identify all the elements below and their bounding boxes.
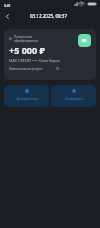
- button[interactable]: Пополнение: [4, 29, 96, 80]
- staticText: +5 000 ₽: [9, 44, 45, 56]
- button[interactable]: Оспорить: [51, 85, 96, 107]
- button[interactable]: Chat with support: [78, 34, 91, 47]
- button[interactable]: Документы: [4, 85, 49, 107]
- staticText: Финансовые услуги: [9, 66, 43, 71]
- staticText: Пополнение: [14, 35, 33, 39]
- staticText: 03.12.2025, 09:37: [30, 13, 67, 19]
- staticText: Документы: [16, 96, 38, 101]
- staticText: Оспорить: [65, 96, 83, 101]
- button[interactable]: Back: [1, 11, 13, 22]
- staticText: обрабатывается: [14, 39, 38, 43]
- staticText: MAX CREDIT •••• Озон Карта: [9, 58, 60, 63]
- staticText: 9:41: [4, 3, 11, 8]
